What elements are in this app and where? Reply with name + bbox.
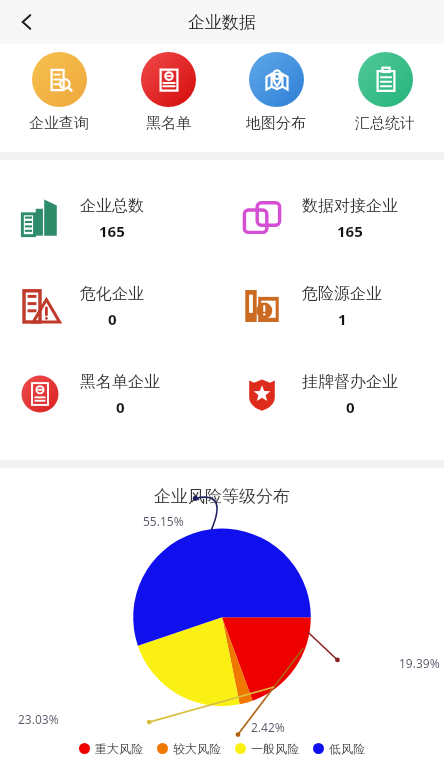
staticText: 企业数据 <box>188 12 256 33</box>
staticText: 165 <box>99 221 125 241</box>
button[interactable]: 企业查询 <box>9 50 109 135</box>
button[interactable]: 危险源企业 <box>222 262 444 350</box>
button[interactable]: 数据对接企业 <box>222 174 444 262</box>
button[interactable]: 黑名单 <box>118 50 218 135</box>
staticText: 165 <box>337 221 363 241</box>
staticText: 重大风险 <box>95 741 143 756</box>
staticText: 地图分布 <box>246 114 306 133</box>
staticText: 2.42% <box>251 719 285 735</box>
button[interactable]: 挂牌督办企业 <box>222 350 444 438</box>
button[interactable]: 汇总统计 <box>335 50 435 135</box>
staticText: 55.15% <box>143 513 184 529</box>
staticText: 数据对接企业 <box>302 196 398 216</box>
button[interactable]: 重大风险 <box>76 741 146 756</box>
staticText: 低风险 <box>329 741 365 756</box>
staticText: 23.03% <box>18 711 59 727</box>
staticText: 挂牌督办企业 <box>302 372 398 392</box>
button[interactable]: 低风险 <box>310 741 368 756</box>
button[interactable]: 危化企业 <box>0 262 222 350</box>
staticText: 19.39% <box>399 655 440 671</box>
button[interactable]: 地图分布 <box>226 50 326 135</box>
staticText: 危化企业 <box>80 284 144 304</box>
button[interactable]: 黑名单企业 <box>0 350 222 438</box>
staticText: 0 <box>116 397 125 417</box>
staticText: 企业查询 <box>29 114 89 133</box>
staticText: 黑名单企业 <box>80 372 160 392</box>
button[interactable]: 一般风险 <box>232 741 302 756</box>
staticText: 一般风险 <box>251 741 299 756</box>
button[interactable]: 较大风险 <box>154 741 224 756</box>
staticText: 0 <box>108 309 117 329</box>
staticText: 较大风险 <box>173 741 221 756</box>
staticText: 黑名单 <box>146 114 191 133</box>
button[interactable]: 企业总数 <box>0 174 222 262</box>
staticText: 企业总数 <box>80 196 144 216</box>
staticText: 危险源企业 <box>302 284 382 304</box>
staticText: 0 <box>346 397 355 417</box>
staticText: 企业风险等级分布 <box>154 486 290 507</box>
staticText: 1 <box>338 309 347 329</box>
button[interactable]: Back <box>8 3 46 41</box>
staticText: 汇总统计 <box>355 114 415 133</box>
